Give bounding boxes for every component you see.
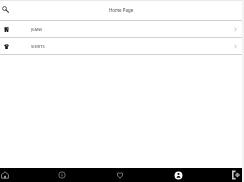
button[interactable]: Search [0, 3, 11, 15]
button[interactable]: Categories [55, 168, 69, 182]
staticText: JEANS [31, 27, 43, 32]
button[interactable]: JEANS [0, 21, 242, 37]
button[interactable]: Cart [229, 168, 243, 182]
button[interactable]: Home [0, 168, 12, 182]
button[interactable]: Favourites [113, 168, 127, 182]
staticText: SHIRTS [31, 44, 45, 49]
button[interactable]: SHIRTS [0, 38, 242, 54]
button[interactable]: Account [171, 168, 185, 182]
staticText: Home Page [109, 7, 134, 13]
